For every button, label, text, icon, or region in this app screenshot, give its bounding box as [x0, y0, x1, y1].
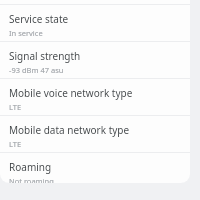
staticText: In service	[9, 28, 43, 38]
staticText: -93 dBm 47 asu	[9, 65, 64, 75]
button[interactable]: Signal strength	[0, 41, 190, 78]
button[interactable]: Mobile data network type	[0, 115, 190, 152]
staticText: LTE	[9, 139, 22, 149]
button[interactable]: Roaming	[0, 152, 190, 183]
staticText: LTE	[9, 102, 22, 112]
staticText: Roaming	[9, 160, 52, 174]
staticText: Mobile data network type	[9, 123, 130, 137]
staticText: Not roaming	[9, 176, 54, 183]
staticText: Signal strength	[9, 49, 81, 63]
staticText: Mobile voice network type	[9, 86, 133, 100]
button[interactable]: Service state	[0, 4, 190, 41]
staticText: Service state	[9, 12, 69, 26]
button[interactable]: Mobile voice network type	[0, 78, 190, 115]
